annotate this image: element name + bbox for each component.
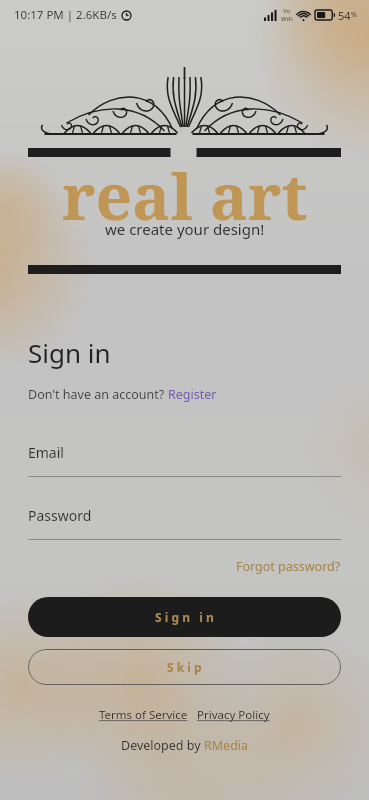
staticText: Developed by (121, 737, 204, 754)
staticText: 54 (338, 8, 351, 23)
staticText: Register (168, 386, 217, 403)
staticText: we create your design! (105, 219, 265, 239)
staticText: Terms of Service (99, 707, 188, 723)
staticText: real art (62, 152, 308, 239)
button[interactable]: Forgot password? (236, 556, 341, 577)
staticText: S k i p (167, 659, 202, 675)
staticText: Email (28, 443, 64, 462)
button[interactable]: Register (168, 386, 217, 403)
staticText: Vo (283, 7, 291, 15)
staticText: % (351, 10, 357, 20)
staticText: S i g n i n (155, 609, 214, 625)
staticText: Password (28, 506, 92, 525)
button[interactable]: Password (28, 506, 341, 540)
button[interactable]: Terms of Service (99, 707, 188, 723)
button[interactable]: Email (28, 443, 341, 477)
staticText: Privacy Policy (197, 707, 270, 723)
button[interactable]: S i g n i n (28, 597, 341, 637)
staticText: 10:17 PM | 2.6KB/s (14, 7, 117, 23)
staticText: Don't have an account? (28, 386, 168, 403)
staticText: RMedia (204, 737, 249, 754)
staticText: WiFi (281, 15, 293, 23)
button[interactable]: Privacy Policy (197, 707, 270, 723)
staticText: Sign in (28, 335, 111, 370)
staticText: Forgot password? (236, 558, 341, 575)
button[interactable]: S k i p (28, 649, 341, 685)
